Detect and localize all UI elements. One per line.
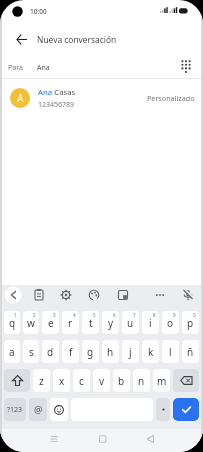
button[interactable]: x	[53, 369, 70, 392]
staticText: l	[169, 345, 172, 359]
staticText: Nueva conversación	[37, 34, 117, 45]
staticText: d	[47, 345, 54, 359]
staticText: y	[108, 316, 114, 330]
button[interactable]: @	[29, 398, 47, 421]
staticText: h	[107, 345, 114, 359]
button[interactable]	[50, 398, 68, 421]
staticText: u	[127, 316, 134, 330]
button[interactable]: h	[102, 340, 119, 363]
button[interactable]: b	[113, 369, 130, 392]
staticText: a	[9, 345, 15, 359]
button[interactable]	[173, 398, 199, 421]
staticText: 2	[33, 312, 36, 318]
staticText: 10:00	[30, 7, 47, 16]
staticText: b	[118, 374, 125, 388]
button[interactable]: q	[4, 311, 20, 334]
button[interactable]: e	[42, 311, 59, 334]
staticText: w	[27, 316, 35, 330]
staticText: v	[99, 374, 105, 388]
staticText: k	[148, 345, 154, 359]
staticText: 6	[113, 312, 116, 318]
staticText: ñ	[187, 345, 194, 359]
staticText: 9	[173, 312, 176, 318]
button[interactable]: j	[122, 340, 139, 363]
button[interactable]	[67, 429, 135, 452]
button[interactable]	[180, 60, 192, 72]
button[interactable]: g	[82, 340, 99, 363]
button[interactable]: k	[142, 340, 159, 363]
staticText: Ana	[37, 63, 50, 73]
button[interactable]	[135, 429, 203, 452]
button[interactable]: t	[82, 311, 99, 334]
staticText: 4	[73, 312, 76, 318]
staticText: r	[68, 316, 73, 330]
button[interactable]: i	[142, 311, 159, 334]
staticText: 123456789	[38, 100, 75, 110]
staticText: @	[34, 403, 43, 416]
button[interactable]	[156, 398, 170, 421]
staticText: 7	[133, 312, 136, 318]
button[interactable]: v	[93, 369, 110, 392]
staticText: ?123	[7, 405, 23, 415]
button[interactable]: a	[4, 340, 20, 363]
staticText: x	[59, 374, 65, 388]
button[interactable]: o	[162, 311, 179, 334]
staticText: n	[138, 374, 145, 388]
button[interactable]: m	[153, 369, 170, 392]
button[interactable]: u	[122, 311, 139, 334]
button[interactable]: ñ	[182, 340, 199, 363]
staticText: t	[89, 316, 93, 330]
button[interactable]	[10, 28, 32, 50]
staticText: m	[157, 374, 167, 388]
staticText: q	[9, 316, 16, 330]
staticText: 1	[14, 312, 17, 318]
staticText: A	[17, 91, 24, 105]
button[interactable]: n	[133, 369, 150, 392]
button[interactable]: z	[33, 369, 50, 392]
staticText: 0	[193, 312, 196, 318]
staticText: e	[48, 316, 54, 330]
button[interactable]: p	[182, 311, 199, 334]
button[interactable]: f	[62, 340, 79, 363]
staticText: Para	[8, 63, 23, 73]
staticText: i	[149, 316, 152, 330]
button[interactable]	[4, 369, 30, 392]
staticText: 5	[93, 312, 96, 318]
button[interactable]: c	[73, 369, 90, 392]
staticText: g	[87, 345, 94, 359]
staticText: f	[69, 345, 73, 359]
staticText: 3	[53, 312, 56, 318]
staticText: o	[167, 316, 174, 330]
staticText: Personalizado	[147, 93, 195, 103]
button[interactable]	[173, 369, 199, 392]
button[interactable]: d	[42, 340, 59, 363]
button[interactable]	[0, 429, 67, 452]
staticText: j	[129, 345, 132, 359]
button[interactable]: y	[102, 311, 119, 334]
staticText: 8	[153, 312, 156, 318]
staticText: Ana Casas	[38, 87, 76, 98]
staticText: s	[29, 345, 34, 359]
button[interactable]: r	[62, 311, 79, 334]
button[interactable]: s	[23, 340, 39, 363]
button[interactable]: A	[0, 77, 203, 119]
button[interactable]: l	[162, 340, 179, 363]
staticText: c	[79, 374, 84, 388]
button[interactable]: ?123	[4, 398, 26, 421]
button[interactable]: w	[23, 311, 39, 334]
button[interactable]: Para	[0, 58, 203, 78]
staticText: z	[39, 374, 44, 388]
staticText: p	[187, 316, 194, 330]
